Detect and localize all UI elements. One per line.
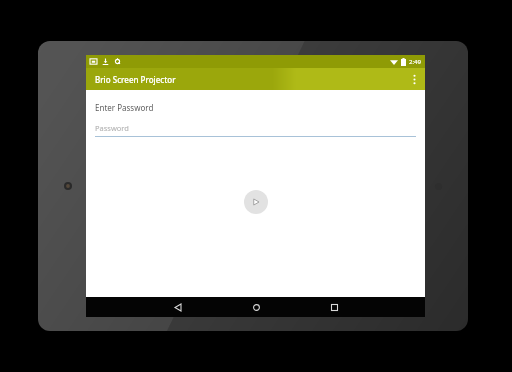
staticText: Brio Screen Projector — [95, 74, 176, 85]
button[interactable]: Back — [150, 297, 206, 317]
button[interactable]: More options — [403, 68, 425, 90]
button[interactable]: Recent apps — [306, 297, 362, 317]
button[interactable]: Play — [244, 190, 268, 214]
button[interactable]: Home — [228, 297, 284, 317]
staticText: 2:49 — [409, 58, 421, 66]
staticText: Enter Password — [95, 102, 154, 113]
button[interactable]: Password — [95, 123, 416, 137]
staticText: Password — [95, 123, 129, 133]
